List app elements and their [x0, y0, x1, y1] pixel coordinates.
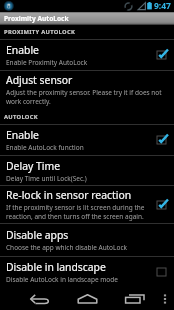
button[interactable]: Re-lock in sensor reaction	[0, 186, 174, 224]
staticText: Enable AutoLock function	[6, 143, 84, 152]
button[interactable]: Back	[17, 287, 63, 310]
staticText: Re-lock in sensor reaction	[6, 188, 132, 202]
staticText: 9:47	[154, 0, 171, 12]
staticText: Adjust sensor	[6, 73, 73, 87]
staticText: Proximity AutoLock	[4, 14, 69, 23]
staticText: Delay Time until Lock(Sec.)	[6, 174, 87, 183]
staticText: Delay Time	[6, 159, 60, 173]
staticText: Enable Proximity AutoLock	[6, 58, 88, 67]
staticText: Adjust the proximity sensor. Please try …	[6, 88, 162, 97]
button[interactable]: More options	[156, 287, 174, 310]
button[interactable]: Disable apps	[0, 224, 174, 257]
staticText: AUTOLOCK	[4, 113, 38, 121]
button[interactable]: Disable in landscape	[0, 257, 174, 287]
staticText: Enable	[6, 43, 39, 57]
staticText: work correctly.	[6, 97, 51, 106]
button[interactable]: Enable	[0, 40, 174, 71]
button[interactable]: Enable	[0, 125, 174, 156]
staticText: Disable AutoLock in landscape mode	[6, 275, 118, 284]
staticText: Disable apps	[6, 228, 69, 242]
button[interactable]: Delay Time	[0, 156, 174, 186]
staticText: Enable	[6, 128, 39, 142]
button[interactable]: Recent apps	[112, 287, 158, 310]
button[interactable]: Home	[65, 287, 111, 310]
staticText: If the proximity sensor is lit screen du…	[6, 203, 145, 212]
staticText: reaction, and then turns off the screen …	[6, 212, 144, 221]
staticText: PROXIMITY AUTOLOCK	[4, 28, 76, 36]
staticText: Disable in landscape	[6, 260, 106, 274]
button[interactable]: Adjust sensor	[0, 71, 174, 108]
staticText: Choose the app which disable AutoLock	[6, 243, 127, 252]
